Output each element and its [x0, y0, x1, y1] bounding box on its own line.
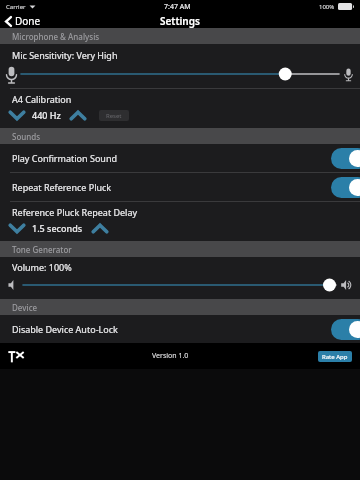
button[interactable]: Rate App	[318, 351, 352, 362]
staticText: Mic Sensitivity: Very High	[12, 49, 118, 61]
staticText: Settings	[160, 14, 200, 28]
button[interactable]: Play Confirmation Sound	[331, 148, 360, 169]
button[interactable]: Mic sensitivity slider	[21, 64, 339, 84]
button[interactable]: Tone generator volume slider	[23, 275, 336, 295]
staticText: Tone Generator	[12, 244, 72, 255]
staticText: Sounds	[12, 131, 41, 142]
staticText: Reference Pluck Repeat Delay	[12, 206, 138, 218]
staticText: 440 Hz	[32, 109, 61, 121]
staticText: Reset	[106, 112, 122, 120]
button[interactable]: App logo	[8, 350, 24, 363]
button[interactable]: Disable Device Auto-Lock	[331, 319, 360, 340]
staticText: Play Confirmation Sound	[12, 152, 118, 164]
button[interactable]: Reset	[99, 110, 129, 121]
staticText: Device	[12, 302, 38, 313]
staticText: Version 1.0	[152, 351, 189, 361]
staticText: 1.5 seconds	[32, 222, 83, 234]
staticText: 100%	[319, 3, 335, 11]
button[interactable]: Done	[5, 14, 41, 28]
staticText: 7:47 AM	[164, 2, 191, 12]
staticText: Rate App	[322, 353, 348, 361]
button[interactable]: Repeat Reference Pluck	[331, 177, 360, 198]
staticText: Microphone & Analysis	[12, 31, 100, 42]
button[interactable]: Decrease repeat delay	[6, 220, 28, 236]
staticText: Volume: 100%	[12, 261, 72, 273]
button[interactable]: Increase A4 calibration	[67, 107, 89, 123]
button[interactable]: Decrease A4 calibration	[6, 107, 28, 123]
staticText: Done	[15, 14, 41, 28]
staticText: A4 Calibration	[12, 93, 72, 105]
staticText: Carrier	[6, 3, 26, 11]
staticText: Disable Device Auto-Lock	[12, 323, 118, 335]
staticText: Repeat Reference Pluck	[12, 181, 112, 193]
button[interactable]: Increase repeat delay	[89, 220, 111, 236]
